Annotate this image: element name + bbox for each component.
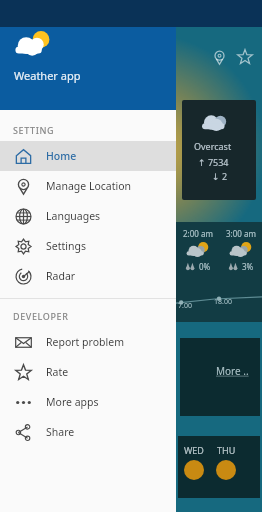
button[interactable]: WED [178,436,260,498]
button[interactable]: Radar [0,261,176,291]
staticText: ↑ 7534 [198,156,229,168]
button[interactable]: Languages [0,201,176,231]
button[interactable]: Weather app [0,0,176,110]
button[interactable]: Settings [0,231,176,261]
staticText: 3% [242,261,254,272]
staticText: ↓ 2 [212,170,228,182]
staticText: Languages [46,209,101,223]
staticText: Settings [46,239,86,253]
button[interactable]: Manage Location [0,171,176,201]
button[interactable]: Rate [0,357,176,387]
button[interactable]: Overcast [182,100,256,200]
staticText: Rate [46,365,69,379]
staticText: 18.00 [214,297,232,307]
staticText: 7.00 [178,301,192,311]
staticText: SETTING [13,124,55,136]
button[interactable]: More apps [0,387,176,417]
staticText: Manage Location [46,179,132,193]
staticText: 2:00 am [183,228,213,239]
button[interactable]: Report problem [0,327,176,357]
staticText: THU [217,444,236,456]
staticText: DEVELOPER [13,310,69,322]
staticText: Report problem [46,335,124,349]
staticText: Overcast [194,140,232,152]
staticText: Radar [46,269,76,283]
staticText: Home [46,149,77,163]
staticText: More .. [216,364,249,378]
button[interactable]: More .. [180,338,260,416]
staticText: WED [184,444,204,456]
staticText: 3:00 am [226,228,256,239]
button[interactable]: Home [0,141,176,171]
button[interactable]: Share [0,417,176,447]
button[interactable]: Manage location [206,44,232,70]
staticText: Weather app [14,68,81,83]
staticText: Share [46,425,75,439]
button[interactable]: 2:00 am [176,222,262,322]
staticText: 0% [199,261,211,272]
staticText: More apps [46,395,99,409]
button[interactable]: Favorite [232,44,258,70]
